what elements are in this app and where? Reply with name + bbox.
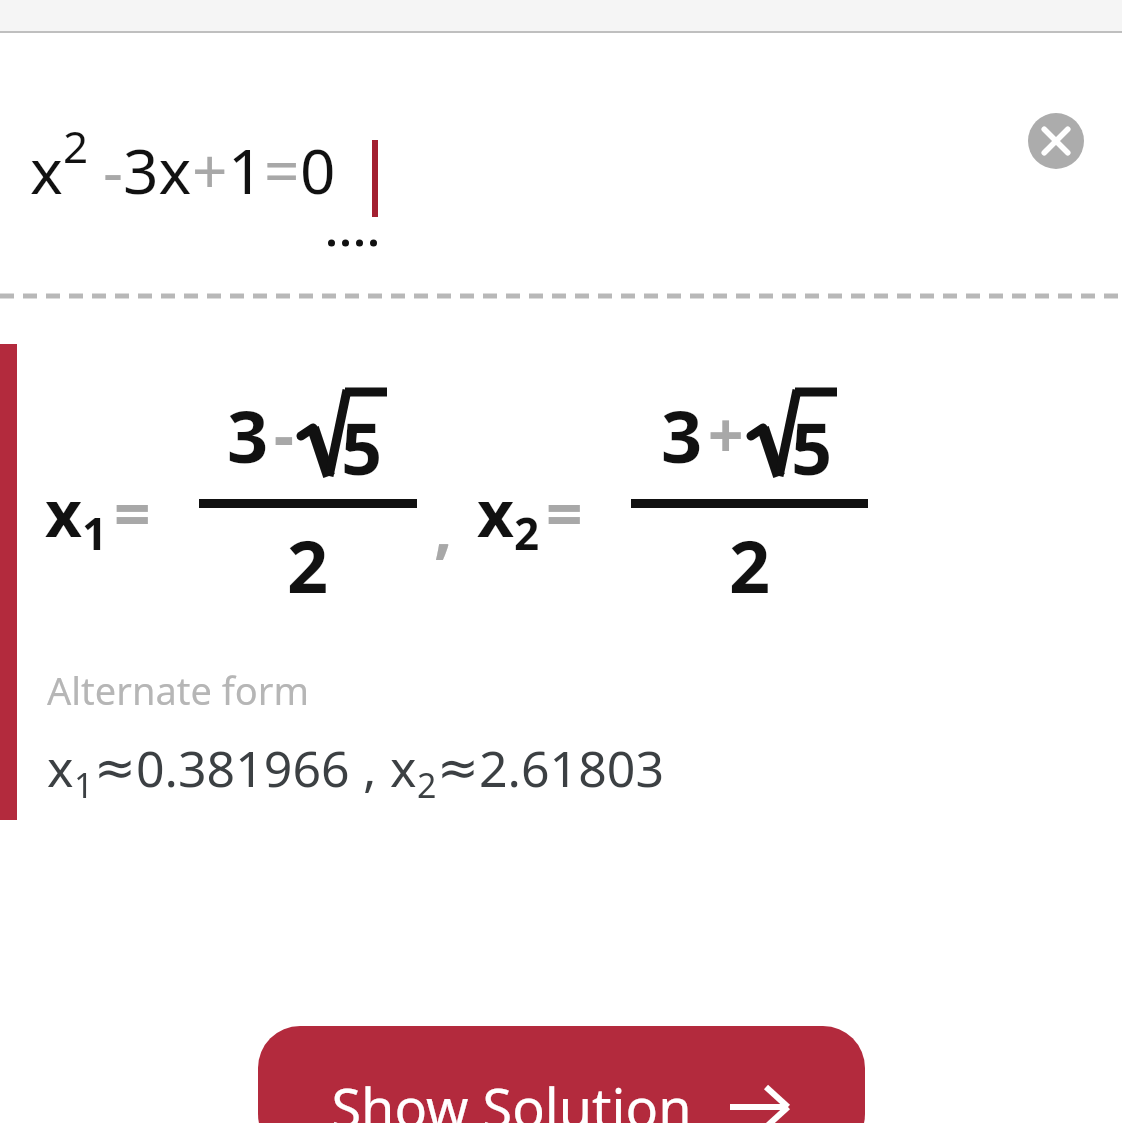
staticText: ≈ — [94, 739, 136, 797]
staticText: - — [103, 128, 123, 212]
staticText: 2 — [63, 116, 89, 176]
staticText: x — [477, 469, 514, 556]
staticText: = — [114, 469, 151, 556]
staticText: = — [546, 469, 583, 556]
staticText: 0 — [300, 128, 336, 212]
staticText: 2 — [729, 516, 771, 614]
staticText: x — [45, 469, 82, 556]
staticText: 3x — [123, 128, 192, 212]
staticText: , — [434, 484, 453, 571]
staticText: 0.381966 — [136, 734, 350, 802]
staticText: = — [264, 128, 300, 212]
staticText: + — [192, 128, 228, 212]
staticText: Show Solution — [331, 1070, 692, 1123]
staticText: 3 — [661, 386, 703, 484]
staticText: 5 — [791, 398, 833, 496]
staticText: x — [47, 734, 74, 802]
button[interactable]: Clear equation — [1028, 113, 1084, 169]
staticText: 2 — [287, 516, 329, 614]
staticText: , — [350, 734, 390, 802]
staticText: 2.61803 — [479, 734, 664, 802]
staticText: - — [274, 392, 294, 476]
staticText: Alternate form — [47, 664, 310, 716]
staticText: x — [390, 734, 417, 802]
staticText: 5 — [341, 398, 383, 496]
staticText: 1 — [228, 128, 264, 212]
staticText: ≈ — [437, 739, 479, 797]
button[interactable]: x — [0, 33, 1122, 295]
button[interactable]: Show Solution — [258, 1026, 865, 1123]
staticText: 2 — [417, 762, 437, 808]
staticText: 1 — [82, 503, 108, 563]
staticText: 1 — [74, 762, 94, 808]
staticText: x — [30, 128, 63, 212]
staticText: 2 — [514, 503, 540, 563]
staticText: 3 — [227, 386, 269, 484]
staticText: + — [708, 392, 744, 476]
